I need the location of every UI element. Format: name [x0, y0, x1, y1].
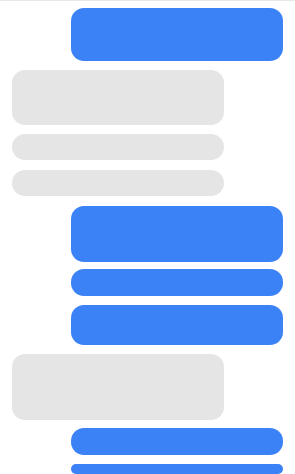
button[interactable]: Sent message [71, 305, 283, 345]
button[interactable]: Received message [12, 170, 224, 196]
button[interactable]: Received message [12, 134, 224, 160]
button[interactable]: Sent message [71, 206, 283, 262]
button[interactable]: Sent message [71, 269, 283, 296]
button[interactable]: Sent message [71, 428, 283, 455]
button[interactable]: Sent message [71, 464, 283, 474]
button[interactable]: Sent message [71, 8, 283, 61]
